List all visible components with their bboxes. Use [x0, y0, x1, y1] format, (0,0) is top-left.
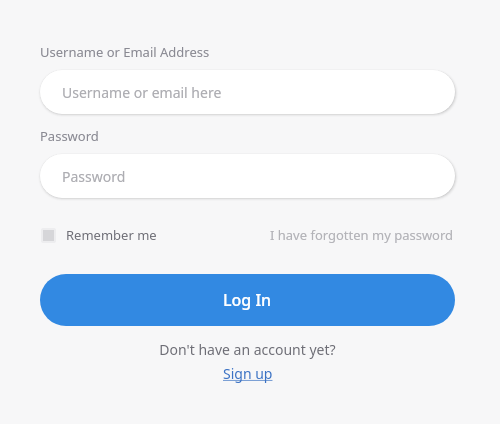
button[interactable]: I have forgotten my password [269, 223, 455, 247]
staticText: Log In [223, 289, 272, 311]
button[interactable]: Sign up [221, 364, 275, 383]
button[interactable]: Remember me [40, 223, 158, 247]
staticText: Sign up [223, 364, 273, 383]
button[interactable]: Log In [40, 274, 455, 326]
staticText: Username or email here [62, 83, 222, 102]
staticText: Password [40, 127, 99, 145]
staticText: Username or Email Address [40, 43, 210, 61]
button[interactable]: Username or email here [40, 70, 455, 114]
staticText: Don't have an account yet? [159, 340, 336, 359]
staticText: Remember me [66, 226, 157, 244]
staticText: Password [62, 167, 126, 186]
button[interactable]: Password [40, 154, 455, 198]
staticText: I have forgotten my password [270, 226, 454, 244]
